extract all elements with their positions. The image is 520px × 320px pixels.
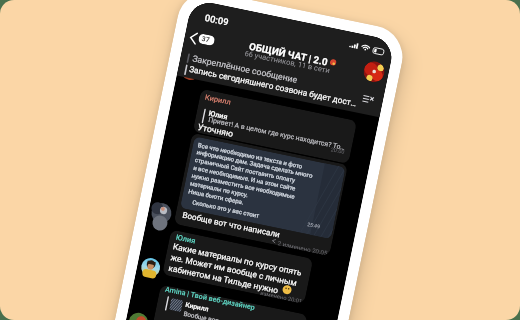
staticText: Какие материалы по курсу опять же. Может… (167, 241, 303, 299)
button[interactable]: 37 (198, 33, 215, 46)
staticText: Кирилл (204, 93, 232, 107)
button[interactable]: Все что необходимо из текста и фото инфо… (174, 133, 348, 256)
button[interactable]: Юлия (162, 229, 313, 304)
button[interactable]: Pinned messages (362, 94, 375, 105)
staticText: 20:00 (330, 146, 345, 155)
staticText: Запись сегодняшнего созвона будет дост… (188, 64, 358, 108)
staticText: Вообще вот что написали (183, 310, 261, 320)
staticText: 2 изменено 20:05 (277, 239, 329, 256)
staticText: Уточняю (197, 122, 235, 139)
staticText: ОБЩИЙ ЧАТ | 2.0 (248, 41, 329, 69)
staticText: 00:09 (204, 12, 230, 28)
button[interactable]: Amina | Твой веб-дизайнер (151, 284, 308, 320)
staticText: Юлия (208, 109, 229, 122)
staticText: Все что необходимо из текста и фото инфо… (188, 141, 315, 218)
button[interactable]: ОБЩИЙ ЧАТ | 2.0 (214, 28, 362, 84)
staticText: Юлия (175, 233, 196, 246)
staticText: Amina | Твой веб-дизайнер (164, 285, 256, 311)
staticText: Сколько это у вас стоит (192, 198, 261, 219)
button[interactable]: Кирилл (193, 89, 357, 164)
staticText: 66 участников, 11 в сети (244, 49, 331, 75)
button[interactable]: Chat avatar (362, 59, 386, 84)
staticText: 25:49 (307, 221, 321, 229)
button[interactable]: Back (185, 30, 202, 46)
staticText: Вообще вот что написали (182, 210, 282, 240)
staticText: 37 (201, 35, 210, 44)
button[interactable]: Закреплённое сообщение (177, 47, 362, 112)
staticText: Закреплённое сообщение (191, 53, 298, 85)
staticText: Кирилл (184, 301, 210, 314)
staticText: изменено 20:01 (260, 290, 303, 303)
staticText: Привет! А в целом где курс находится? То… (208, 116, 346, 152)
